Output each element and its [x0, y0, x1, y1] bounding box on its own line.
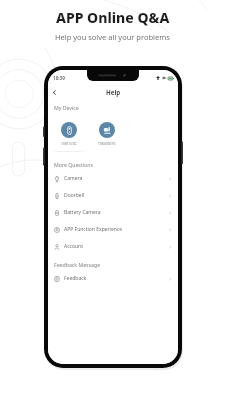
staticText: T08400076 — [98, 141, 116, 146]
staticText: More Questions — [54, 161, 93, 168]
button[interactable]: Back — [48, 86, 60, 98]
button[interactable]: Feedback — [48, 270, 178, 287]
staticText: Feedback — [64, 275, 87, 282]
button[interactable]: APP Function Experience — [48, 221, 178, 238]
button[interactable]: Account — [48, 238, 178, 255]
button[interactable]: 1081374C — [52, 115, 86, 153]
staticText: My Device — [54, 104, 79, 111]
button[interactable]: T08400076 — [90, 115, 124, 153]
button[interactable]: Camera — [48, 170, 178, 187]
staticText: Camera — [64, 175, 83, 182]
staticText: Help you solve all your problems — [55, 32, 170, 42]
staticText: Doorbell — [64, 192, 85, 199]
staticText: Battery Camera — [64, 209, 101, 216]
staticText: Account — [64, 243, 84, 250]
staticText: 1081374C — [61, 141, 77, 146]
staticText: Feedback Message — [54, 261, 101, 268]
button[interactable]: Battery Camera — [48, 204, 178, 221]
button[interactable]: Doorbell — [48, 187, 178, 204]
staticText: Help — [106, 88, 121, 96]
staticText: APP Function Experience — [64, 226, 123, 233]
staticText: APP Online Q&A — [56, 8, 170, 27]
staticText: 10:39 — [53, 75, 65, 81]
